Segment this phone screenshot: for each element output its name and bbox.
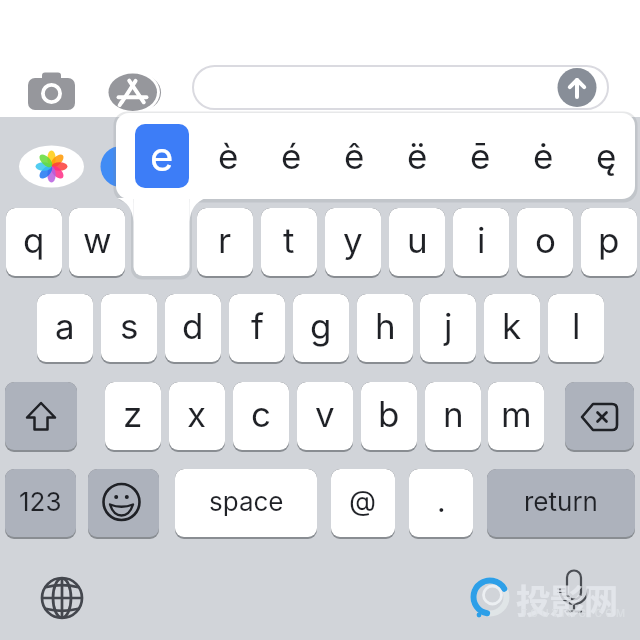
- staticText: v: [315, 393, 335, 435]
- staticText: m: [501, 393, 532, 435]
- button[interactable]: space: [175, 469, 317, 539]
- button[interactable]: d: [165, 294, 221, 364]
- button[interactable]: q: [6, 208, 62, 278]
- button[interactable]: [107, 70, 157, 116]
- staticText: 投影网: [516, 575, 618, 624]
- staticText: t: [283, 219, 295, 261]
- staticText: q: [23, 219, 45, 261]
- staticText: @: [349, 484, 377, 518]
- staticText: 123: [19, 486, 62, 517]
- staticText: i: [477, 219, 486, 261]
- button[interactable]: [557, 68, 597, 108]
- button[interactable]: n: [425, 382, 481, 452]
- button[interactable]: [5, 382, 77, 452]
- staticText: n: [443, 393, 464, 435]
- button[interactable]: g: [293, 294, 349, 364]
- button[interactable]: x: [169, 382, 225, 452]
- staticText: TOUYING.COM: [521, 607, 629, 619]
- button[interactable]: h: [357, 294, 413, 364]
- staticText: ė: [533, 135, 554, 177]
- button[interactable]: l: [548, 294, 604, 364]
- staticText: s: [120, 305, 139, 347]
- staticText: e: [150, 132, 174, 180]
- button[interactable]: m: [488, 382, 544, 452]
- staticText: ë: [407, 135, 428, 177]
- button[interactable]: [40, 576, 84, 620]
- staticText: u: [407, 219, 428, 261]
- button[interactable]: 123: [5, 469, 76, 539]
- staticText: a: [55, 305, 75, 347]
- staticText: h: [375, 305, 396, 347]
- button[interactable]: b: [361, 382, 417, 452]
- staticText: z: [123, 393, 143, 435]
- staticText: j: [444, 305, 453, 347]
- staticText: ē: [470, 135, 491, 177]
- button[interactable]: [25, 70, 78, 114]
- button[interactable]: ë: [386, 121, 448, 191]
- button[interactable]: è: [197, 121, 259, 191]
- button[interactable]: c: [233, 382, 289, 452]
- staticText: é: [281, 135, 302, 177]
- button[interactable]: @: [331, 469, 395, 539]
- button[interactable]: s: [101, 294, 157, 364]
- button[interactable]: j: [420, 294, 476, 364]
- staticText: o: [535, 219, 556, 261]
- button[interactable]: r: [197, 208, 253, 278]
- button[interactable]: ė: [512, 121, 574, 191]
- staticText: y: [343, 219, 363, 261]
- staticText: d: [182, 305, 204, 347]
- button[interactable]: o: [517, 208, 573, 278]
- staticText: k: [502, 305, 522, 347]
- button[interactable]: ē: [449, 121, 511, 191]
- button[interactable]: k: [484, 294, 540, 364]
- button[interactable]: t: [261, 208, 317, 278]
- button[interactable]: f: [229, 294, 285, 364]
- button[interactable]: [88, 469, 159, 539]
- button[interactable]: w: [69, 208, 125, 278]
- button[interactable]: y: [325, 208, 381, 278]
- staticText: p: [598, 219, 620, 261]
- button[interactable]: ę: [575, 121, 637, 191]
- staticText: x: [187, 393, 207, 435]
- button[interactable]: v: [297, 382, 353, 452]
- staticText: g: [310, 305, 332, 347]
- staticText: ę: [596, 135, 617, 177]
- staticText: space: [209, 486, 284, 517]
- button[interactable]: é: [260, 121, 322, 191]
- staticText: .: [437, 483, 446, 519]
- staticText: è: [218, 135, 239, 177]
- button[interactable]: return: [487, 469, 635, 539]
- button[interactable]: e: [135, 124, 189, 188]
- button[interactable]: z: [105, 382, 161, 452]
- button[interactable]: ê: [323, 121, 385, 191]
- button[interactable]: .: [409, 469, 473, 539]
- staticText: r: [218, 219, 232, 261]
- staticText: c: [251, 393, 271, 435]
- staticText: b: [378, 393, 400, 435]
- staticText: ê: [344, 135, 365, 177]
- button[interactable]: p: [581, 208, 637, 278]
- button[interactable]: i: [453, 208, 509, 278]
- button[interactable]: [193, 66, 608, 109]
- staticText: w: [83, 219, 112, 261]
- staticText: return: [524, 486, 598, 517]
- staticText: l: [572, 305, 581, 347]
- staticText: f: [251, 305, 264, 347]
- button[interactable]: [565, 382, 634, 452]
- button[interactable]: a: [37, 294, 93, 364]
- button[interactable]: u: [389, 208, 445, 278]
